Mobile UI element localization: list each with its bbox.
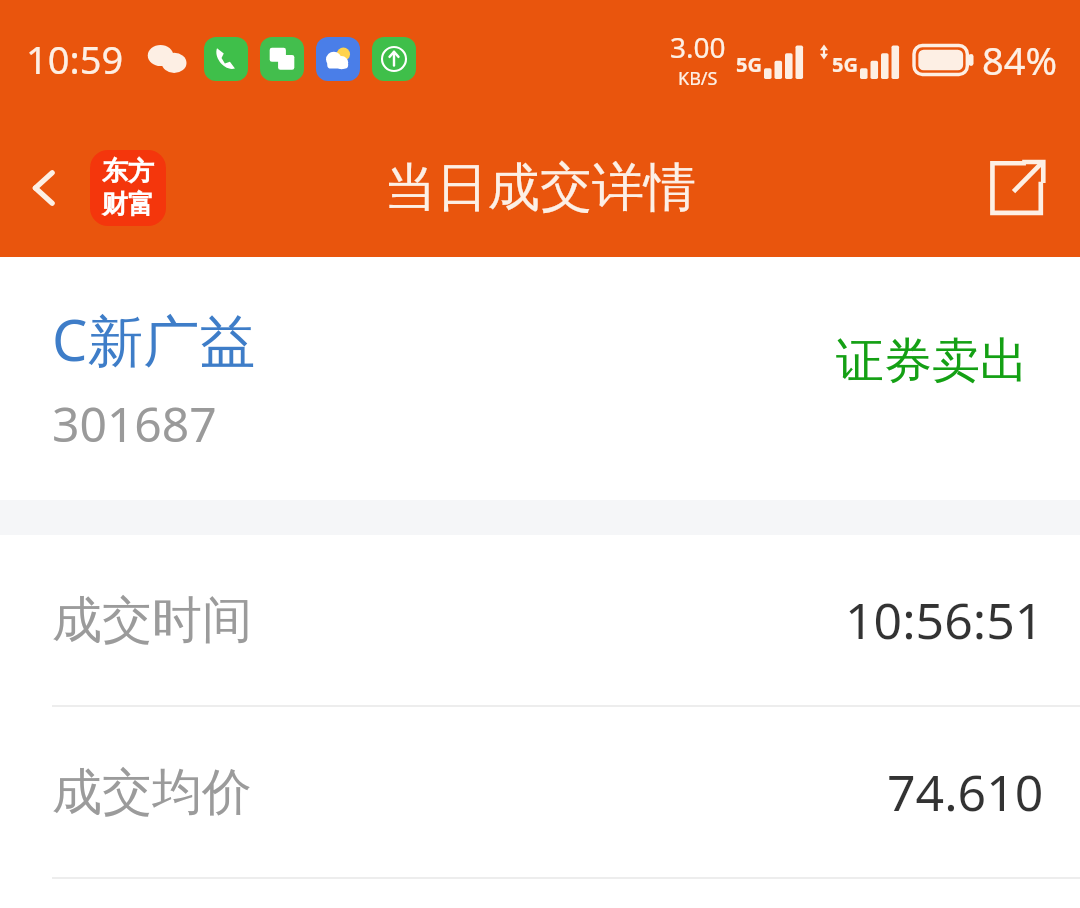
staticText: KB/S [678, 66, 718, 91]
staticText: 10:56:51 [845, 586, 1044, 654]
staticText: 3.00 [670, 28, 726, 66]
button[interactable]: 成交时间 [0, 535, 1080, 705]
staticText: 证券卖出 [836, 331, 1028, 391]
staticText: 301687 [52, 391, 217, 456]
staticText: 5G [832, 51, 858, 78]
button[interactable]: Back [10, 153, 80, 223]
button[interactable]: C新广益 [0, 257, 1080, 500]
button[interactable]: Share [974, 146, 1058, 230]
button[interactable]: 成交均价 [0, 707, 1080, 877]
staticText: 财富 [102, 188, 154, 221]
staticText: 东方 [102, 155, 154, 188]
staticText: 74.610 [887, 758, 1044, 826]
staticText: 当日成交详情 [384, 155, 696, 221]
staticText: C新广益 [52, 301, 256, 377]
staticText: 5G [736, 51, 762, 78]
staticText: 10:59 [26, 33, 124, 85]
staticText: 成交均价 [52, 761, 252, 824]
staticText: 成交时间 [52, 589, 252, 652]
staticText: 84% [982, 34, 1058, 86]
button[interactable]: 东方财富 [90, 150, 166, 226]
